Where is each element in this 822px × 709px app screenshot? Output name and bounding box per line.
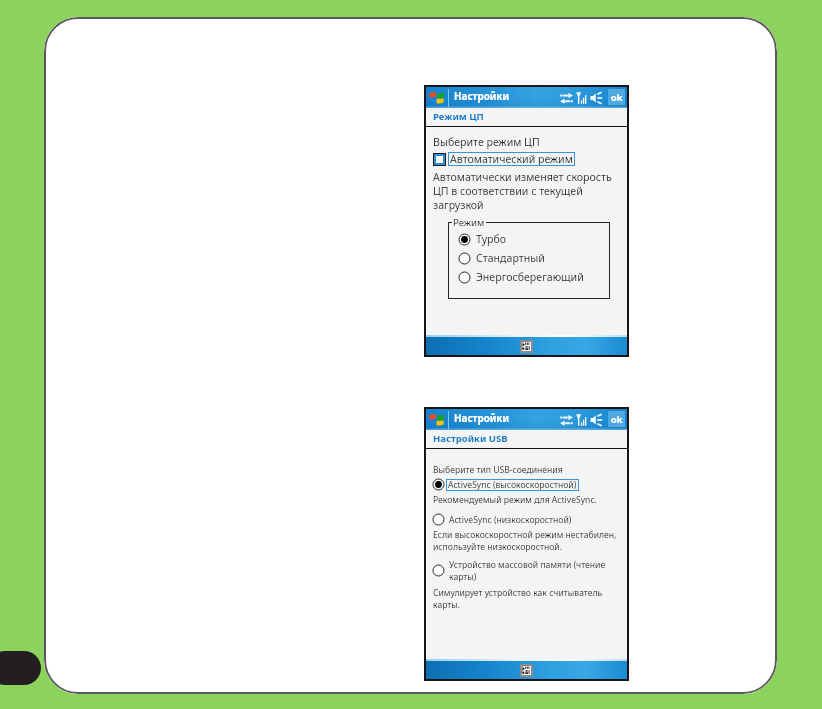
button[interactable]: Keyboard	[522, 342, 531, 351]
button[interactable]: Option	[432, 513, 445, 526]
button[interactable]: Option	[458, 233, 471, 246]
button[interactable]: Option	[432, 513, 572, 526]
button[interactable]: Option	[458, 270, 584, 284]
button[interactable]: Option	[432, 559, 629, 582]
button[interactable]: Option	[458, 232, 507, 246]
button[interactable]: Keyboard	[522, 666, 531, 675]
staticText: Выберите режим ЦП	[433, 135, 540, 149]
staticText: Турбо	[476, 232, 507, 246]
staticText: Настройки	[454, 90, 510, 103]
staticText: Настройки USB	[433, 432, 508, 445]
staticText: ActiveSync (высокоскоростной)	[448, 479, 577, 491]
staticText: Стандартный	[476, 251, 545, 265]
staticText: Устройство массовой памяти (чтение карты…	[449, 559, 629, 582]
staticText: Настройки	[454, 412, 510, 425]
button[interactable]: Option	[458, 251, 545, 265]
staticText: Режим ЦП	[433, 110, 484, 123]
staticText: Выберите тип USB-соединения	[433, 464, 563, 476]
button[interactable]: ok	[608, 89, 625, 105]
button[interactable]: Option	[432, 478, 445, 491]
staticText: Автоматически изменяет скорость ЦП в соо…	[433, 170, 625, 212]
staticText: Энергосберегающий	[476, 270, 584, 284]
staticText: ok	[611, 91, 623, 104]
staticText: ok	[611, 413, 623, 426]
staticText: Рекомендуемый режим для ActiveSync.	[433, 494, 597, 506]
staticText: Автоматический режим	[450, 152, 573, 166]
button[interactable]: Option	[432, 478, 579, 491]
staticText: Если высокоскоростной режим нестабилен, …	[433, 529, 631, 552]
button[interactable]: Option	[458, 271, 471, 284]
button[interactable]: ok	[608, 411, 625, 427]
staticText: Режим	[453, 216, 485, 229]
staticText: Симулирует устройство как считыватель ка…	[433, 587, 630, 610]
button[interactable]: Автоматический режим	[433, 152, 575, 166]
staticText: ActiveSync (низкоскоростной)	[449, 514, 572, 526]
button[interactable]: Option	[432, 564, 445, 577]
button[interactable]: Option	[458, 252, 471, 265]
